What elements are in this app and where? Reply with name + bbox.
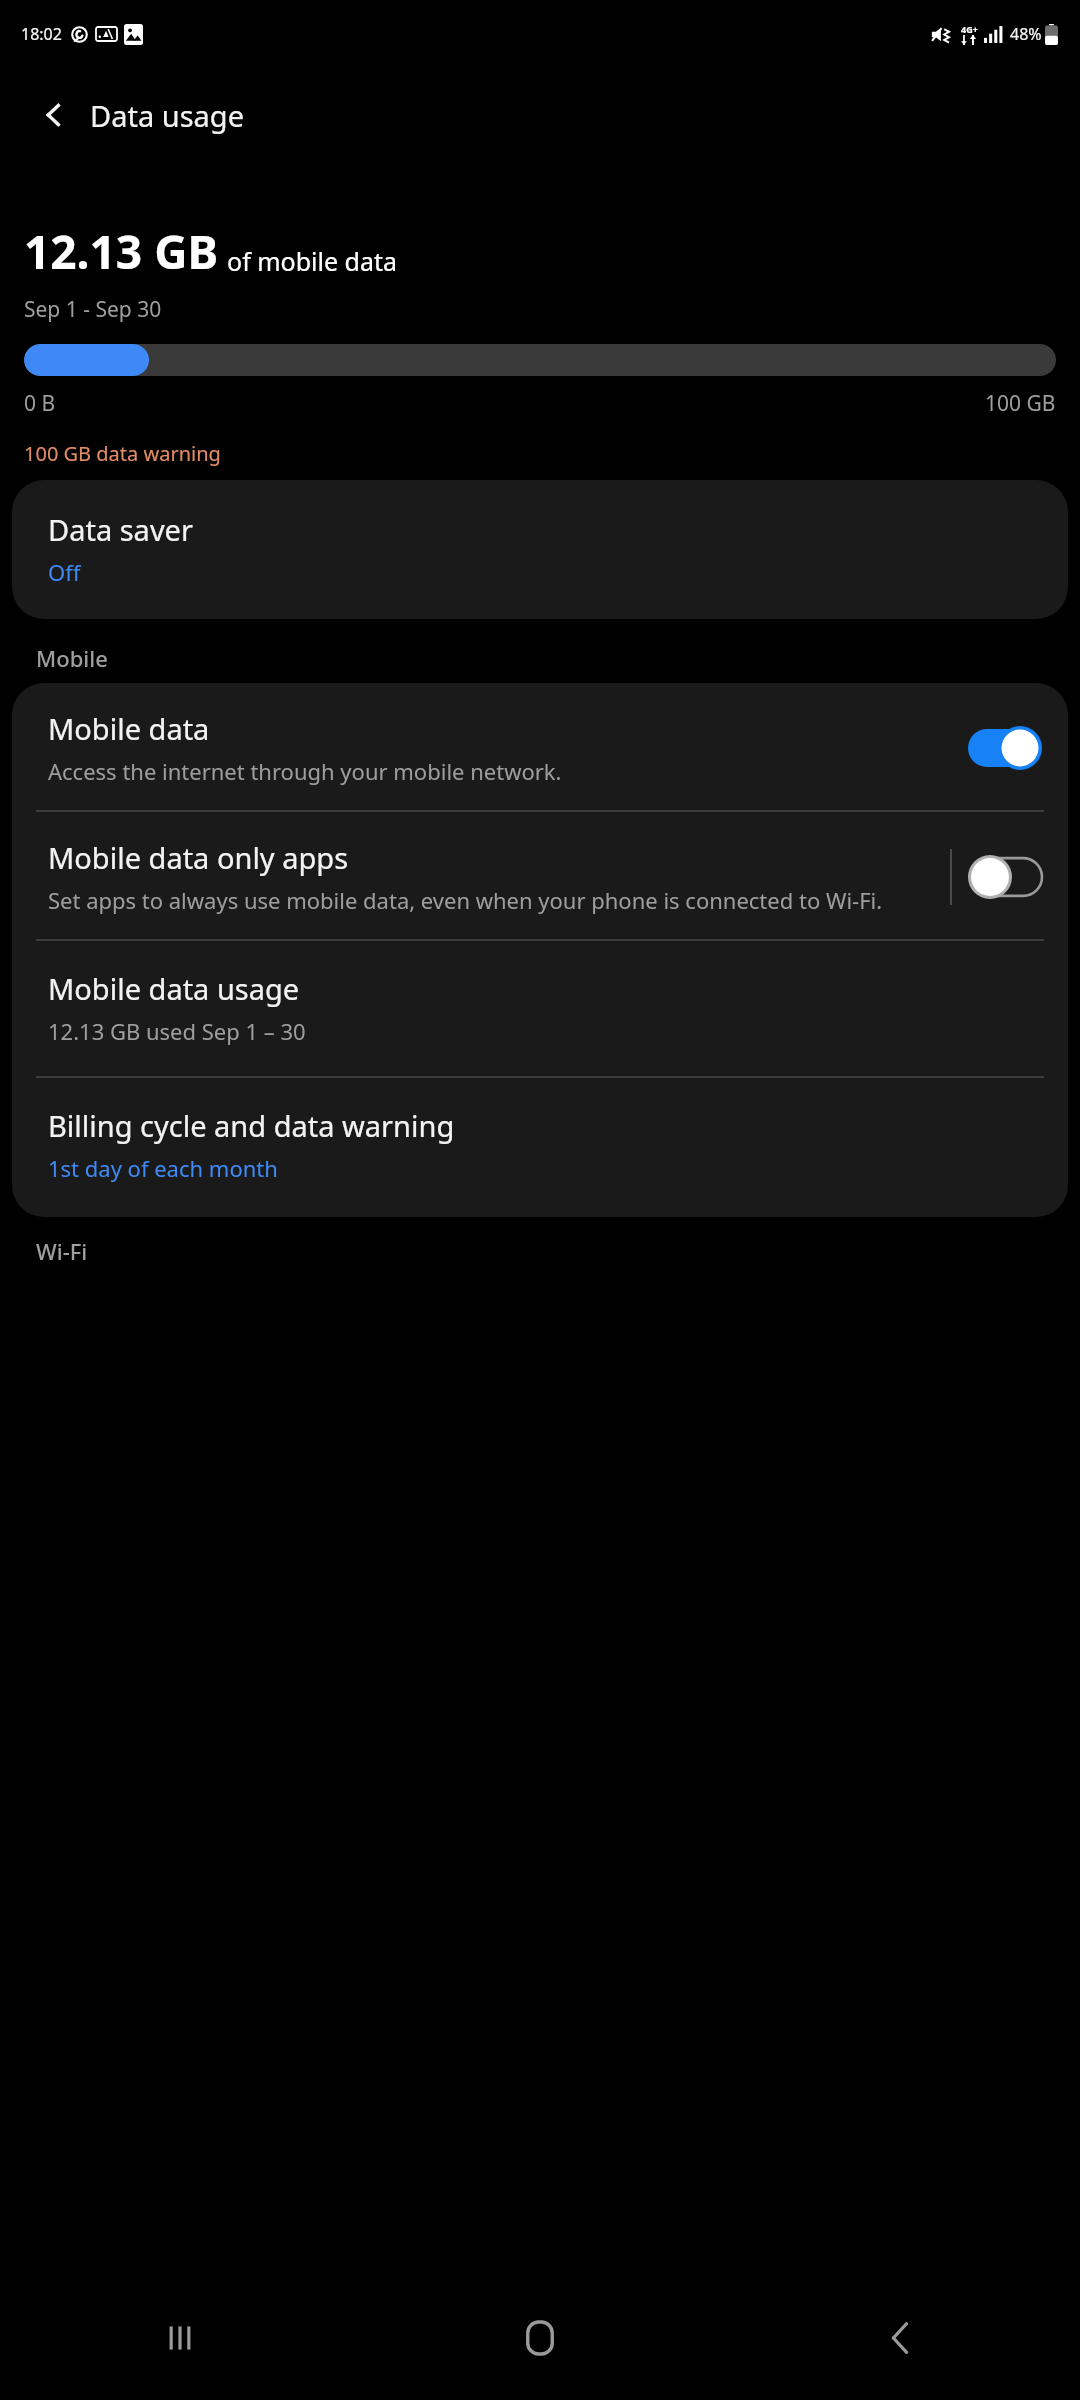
staticText: of mobile data [227, 244, 398, 278]
staticText: Off [48, 557, 81, 587]
staticText: Mobile data only apps [48, 838, 349, 877]
staticText: 100 GB data warning [24, 440, 221, 467]
staticText: 100 GB [985, 389, 1056, 418]
staticText: Mobile data usage [48, 969, 300, 1008]
button[interactable]: Data saver [12, 480, 1068, 619]
staticText: Data saver [48, 510, 193, 549]
staticText: 1st day of each month [48, 1153, 278, 1183]
staticText: Data usage [90, 96, 244, 135]
staticText: 48% [1010, 23, 1042, 45]
button[interactable]: Mobile data on [968, 726, 1042, 770]
button[interactable]: Back [30, 91, 78, 139]
staticText: Billing cycle and data warning [48, 1106, 455, 1145]
staticText: 18:02 [21, 23, 62, 45]
staticText: 0 B [24, 389, 56, 418]
button[interactable]: Recents [0, 2276, 360, 2400]
staticText: 12.13 GB [24, 220, 219, 283]
button[interactable]: Billing cycle and data warning [12, 1078, 1068, 1217]
staticText: Access the internet through your mobile … [48, 756, 562, 786]
staticText: Wi-Fi [36, 1236, 88, 1266]
button[interactable]: Mobile data only apps off [968, 855, 1042, 899]
staticText: 12.13 GB used Sep 1 – 30 [48, 1016, 306, 1046]
button[interactable]: Mobile data [12, 683, 1068, 810]
staticText: Mobile data [48, 709, 210, 748]
button[interactable]: Back [720, 2276, 1080, 2400]
button[interactable]: Home [360, 2276, 720, 2400]
button[interactable]: Mobile data only apps [12, 812, 1068, 939]
staticText: Set apps to always use mobile data, even… [48, 885, 883, 915]
staticText: Mobile [36, 643, 108, 673]
button[interactable]: Mobile data usage [12, 941, 1068, 1076]
staticText: 4G+ [961, 23, 978, 35]
staticText: Sep 1 - Sep 30 [24, 295, 162, 324]
